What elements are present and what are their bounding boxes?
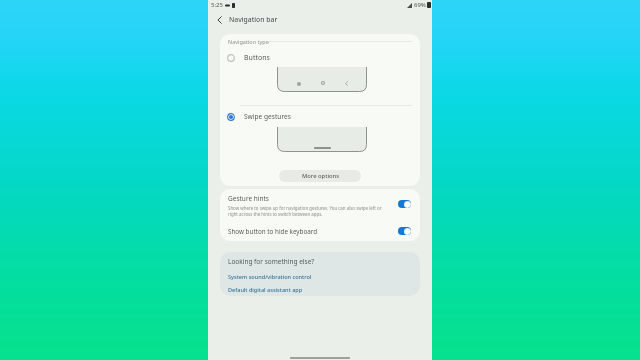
staticText: More options xyxy=(302,172,339,180)
staticText: Navigation bar xyxy=(229,15,278,24)
staticText: Looking for something else? xyxy=(228,257,315,266)
staticText: 69% xyxy=(414,1,426,9)
button[interactable]: Default digital assistant app xyxy=(228,286,303,294)
staticText: Swipe gestures xyxy=(244,112,291,121)
button[interactable]: Toggle xyxy=(398,227,411,235)
button[interactable]: Toggle xyxy=(398,200,411,208)
button[interactable]: Swipe gestures xyxy=(220,109,420,124)
other: Back xyxy=(211,12,227,28)
button[interactable]: Show button to hide keyboard xyxy=(220,218,420,241)
button[interactable]: Gesture hints xyxy=(220,189,420,218)
staticText: Gesture hints xyxy=(228,194,269,203)
button[interactable]: Buttons xyxy=(220,50,420,65)
staticText: Navigation type xyxy=(228,38,269,45)
staticText: Show button to hide keyboard xyxy=(228,227,318,236)
staticText: Buttons xyxy=(244,53,270,63)
button[interactable]: Back xyxy=(211,11,278,28)
button[interactable]: System sound/vibration control xyxy=(228,273,312,281)
staticText: 5:25 xyxy=(211,1,223,9)
button[interactable]: More options xyxy=(279,170,361,182)
staticText: Show where to swipe up for navigation ge… xyxy=(228,205,387,217)
